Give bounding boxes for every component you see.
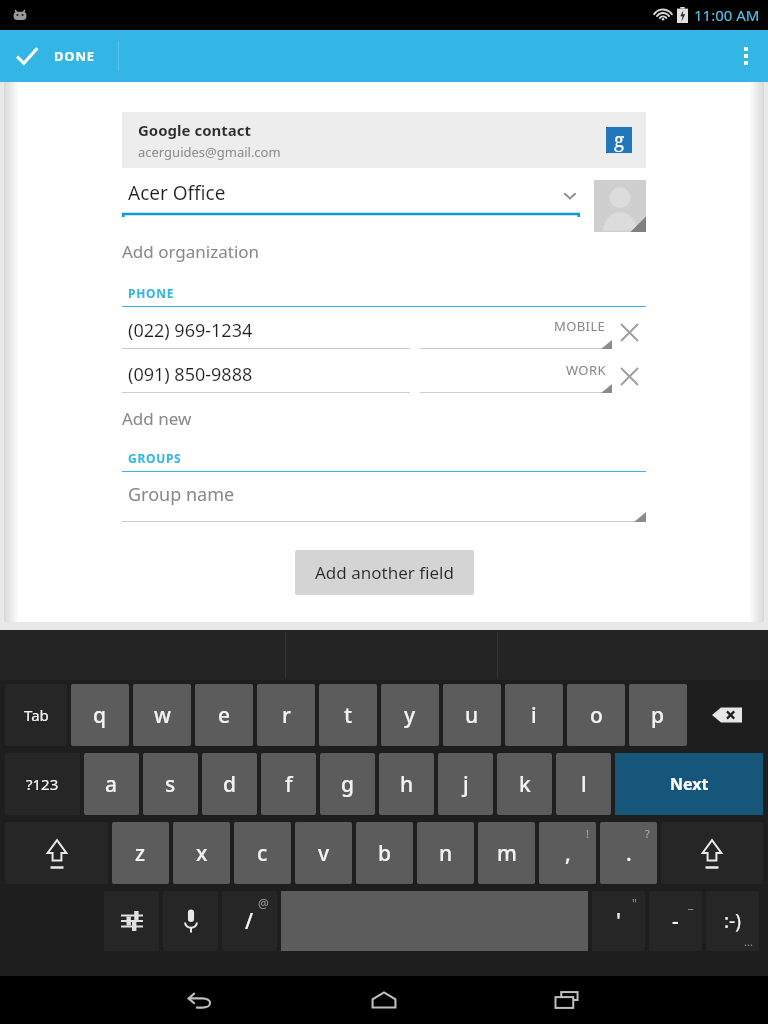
staticText: f	[285, 770, 293, 799]
button[interactable]: Group name	[122, 482, 646, 522]
staticText: a	[105, 770, 118, 799]
button[interactable]: .	[600, 822, 657, 884]
staticText: Acer Office	[128, 180, 562, 206]
button[interactable]: Shift	[5, 822, 108, 884]
staticText: p	[651, 701, 665, 730]
staticText: WORK	[566, 361, 606, 379]
staticText: m	[497, 839, 517, 868]
staticText: n	[439, 839, 453, 868]
button[interactable]: WORK	[420, 361, 612, 393]
button[interactable]: a	[84, 753, 139, 815]
button[interactable]: ,	[539, 822, 596, 884]
button[interactable]: z	[112, 822, 169, 884]
button[interactable]: /	[222, 891, 277, 951]
staticText: u	[465, 701, 479, 730]
staticText: v	[318, 839, 330, 868]
staticText: g	[614, 127, 625, 153]
staticText: GROUPS	[128, 450, 182, 466]
staticText: d	[223, 770, 237, 799]
button[interactable]: l	[556, 753, 611, 815]
button[interactable]: Tab	[5, 684, 67, 746]
button[interactable]: DONE	[0, 30, 113, 82]
button[interactable]: h	[379, 753, 434, 815]
button[interactable]: Voice input	[163, 891, 218, 951]
staticText: q	[93, 701, 107, 730]
button[interactable]: n	[417, 822, 474, 884]
button[interactable]: Home	[356, 978, 412, 1022]
button[interactable]: Keyboard settings	[104, 891, 159, 951]
button[interactable]: MOBILE	[420, 317, 612, 349]
staticText: Group name	[128, 482, 235, 507]
button[interactable]: t	[319, 684, 377, 746]
staticText: @	[258, 895, 269, 911]
button[interactable]: p	[629, 684, 687, 746]
button[interactable]: y	[381, 684, 439, 746]
button[interactable]: Add organization	[122, 240, 260, 263]
staticText: g	[341, 770, 355, 799]
button[interactable]: Add another field	[295, 550, 474, 595]
staticText: x	[196, 839, 208, 868]
button[interactable]: g	[320, 753, 375, 815]
button[interactable]: f	[261, 753, 316, 815]
staticText: b	[378, 839, 392, 868]
button[interactable]: -	[649, 891, 702, 951]
button[interactable]: Acer Office	[122, 180, 580, 217]
staticText: (091) 850-9888	[128, 362, 253, 387]
button[interactable]: Add new	[122, 407, 192, 430]
button[interactable]: c	[234, 822, 291, 884]
staticText: ?	[645, 826, 650, 841]
button[interactable]: w	[133, 684, 191, 746]
button[interactable]: Back	[173, 978, 229, 1022]
button[interactable]: o	[567, 684, 625, 746]
staticText: j	[463, 770, 469, 799]
button[interactable]: b	[356, 822, 413, 884]
staticText: 11:00 AM	[694, 5, 760, 25]
staticText: i	[531, 701, 537, 730]
button[interactable]: d	[202, 753, 257, 815]
staticText: l	[581, 770, 587, 799]
button[interactable]: e	[195, 684, 253, 746]
staticText: e	[218, 701, 231, 730]
staticText: y	[404, 701, 416, 730]
button[interactable]: '	[592, 891, 645, 951]
staticText: _	[688, 895, 694, 911]
staticText: :-)	[724, 908, 741, 934]
button[interactable]: Google contact	[122, 112, 646, 168]
button[interactable]: v	[295, 822, 352, 884]
staticText: Add another field	[315, 561, 454, 584]
button[interactable]: (022) 969-1234	[122, 318, 410, 349]
button[interactable]: Recent apps	[539, 978, 595, 1022]
staticText: Next	[670, 773, 709, 795]
button[interactable]: k	[497, 753, 552, 815]
button[interactable]: Backspace	[691, 684, 763, 746]
button[interactable]: :-)	[706, 891, 759, 951]
button[interactable]: s	[143, 753, 198, 815]
button[interactable]: r	[257, 684, 315, 746]
staticText: t	[344, 701, 353, 730]
button[interactable]: Contact photo	[594, 180, 646, 232]
button[interactable]: More options	[724, 30, 768, 82]
button[interactable]: Delete MOBILE number	[612, 315, 646, 349]
staticText: r	[282, 701, 291, 730]
staticText: c	[257, 839, 268, 868]
button[interactable]: u	[443, 684, 501, 746]
button[interactable]: Next	[615, 753, 763, 815]
button[interactable]: (091) 850-9888	[122, 362, 410, 393]
button[interactable]: Shift	[661, 822, 763, 884]
button[interactable]: i	[505, 684, 563, 746]
staticText: h	[400, 770, 414, 799]
button[interactable]: m	[478, 822, 535, 884]
button[interactable]: j	[438, 753, 493, 815]
staticText: w	[154, 701, 171, 730]
button[interactable]: Delete WORK number	[612, 359, 646, 393]
button[interactable]: x	[173, 822, 230, 884]
button[interactable]: q	[71, 684, 129, 746]
staticText: "	[632, 895, 637, 911]
staticText: acerguides@gmail.com	[138, 143, 281, 161]
button[interactable]: ?123	[5, 753, 80, 815]
staticText: '	[616, 907, 621, 936]
staticText: !	[586, 826, 589, 841]
staticText: Google contact	[138, 120, 252, 140]
staticText: ?123	[26, 774, 59, 794]
